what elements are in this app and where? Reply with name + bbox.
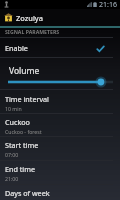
staticText: SIGNAL PARAMETERS <box>5 28 60 35</box>
staticText: 21:16 <box>99 0 117 9</box>
staticText: Time interval <box>5 94 49 104</box>
button[interactable]: Cuckoo <box>0 114 120 137</box>
staticText: 10 min <box>5 105 22 112</box>
staticText: End time <box>5 164 35 174</box>
staticText: 07:00 <box>5 151 19 158</box>
staticText: Cuckoo <box>5 117 30 127</box>
staticText: Enable <box>5 43 28 53</box>
button[interactable]: Days of week <box>0 185 120 200</box>
staticText: Zozulya <box>16 13 43 23</box>
button[interactable]: End time <box>0 161 120 185</box>
staticText: Days of week <box>5 188 50 198</box>
staticText: Cuckoo - forest <box>5 128 42 135</box>
button[interactable]: Start time <box>0 137 120 161</box>
button[interactable]: Time interval <box>0 91 120 114</box>
staticText: Start time <box>5 140 39 150</box>
staticText: 21:00 <box>5 175 19 182</box>
button[interactable]: Enable <box>92 41 108 57</box>
button[interactable]: Enable <box>0 38 120 58</box>
button[interactable]: Volume <box>0 59 120 90</box>
staticText: Volume <box>9 65 40 77</box>
button[interactable]: Zozulya <box>0 9 120 26</box>
